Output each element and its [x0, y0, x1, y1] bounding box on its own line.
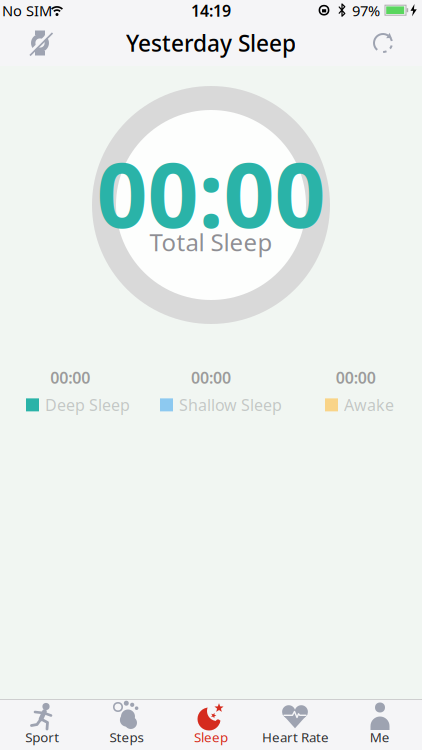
- button[interactable]: [0, 20, 60, 66]
- button[interactable]: Sleep: [169, 700, 253, 750]
- staticText: Sport: [25, 728, 59, 746]
- staticText: 00:00: [336, 367, 376, 388]
- staticText: Shallow Sleep: [179, 394, 282, 415]
- button[interactable]: Sport: [0, 700, 84, 750]
- button[interactable]: Steps: [84, 700, 169, 750]
- button[interactable]: Me: [338, 700, 422, 750]
- staticText: No SIM: [2, 1, 52, 20]
- staticText: Total Sleep: [149, 226, 272, 258]
- staticText: Me: [370, 728, 390, 746]
- staticText: Deep Sleep: [45, 394, 130, 415]
- staticText: Steps: [110, 728, 144, 746]
- staticText: 00:00: [96, 134, 325, 252]
- staticText: 00:00: [191, 367, 231, 388]
- staticText: Heart Rate: [262, 728, 329, 746]
- staticText: 97%: [352, 1, 380, 20]
- button[interactable]: Heart Rate: [253, 700, 338, 750]
- staticText: Sleep: [194, 728, 228, 746]
- button[interactable]: [362, 20, 422, 66]
- staticText: 14:19: [191, 0, 231, 21]
- staticText: Yesterday Sleep: [126, 28, 296, 58]
- staticText: 00:00: [50, 367, 90, 388]
- staticText: Awake: [344, 394, 394, 415]
